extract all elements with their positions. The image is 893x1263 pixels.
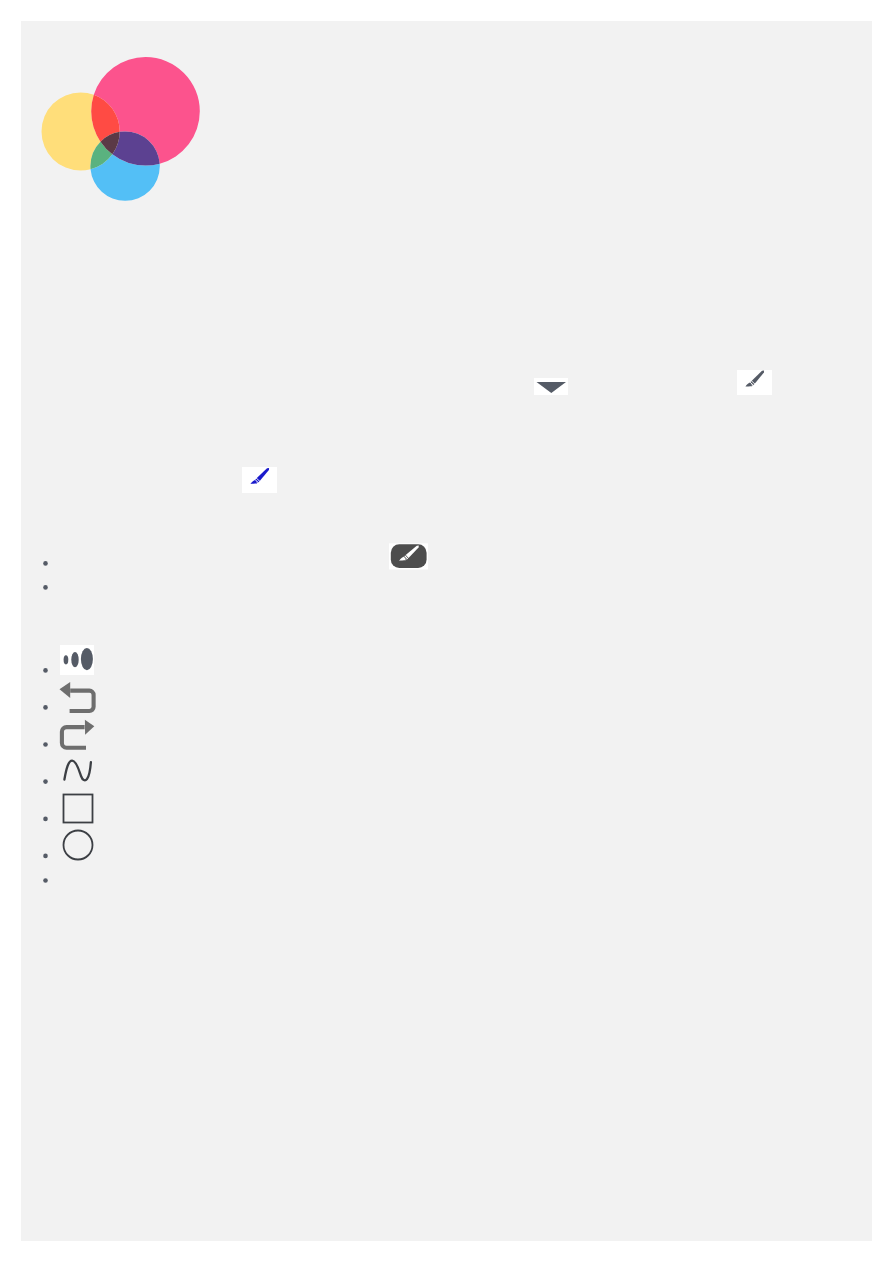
- button[interactable]: Brush colour: [242, 467, 277, 493]
- button[interactable]: Rectangle: [62, 793, 94, 824]
- button[interactable]: Brush tool selected: [390, 544, 427, 569]
- button[interactable]: Redo: [61, 718, 96, 751]
- button[interactable]: Brush size: [60, 645, 94, 675]
- button[interactable]: Brush tool: [737, 370, 772, 395]
- button[interactable]: Undo: [59, 681, 95, 714]
- button[interactable]: Freehand: [62, 757, 94, 784]
- button[interactable]: Ellipse: [62, 829, 94, 861]
- button[interactable]: Show more: [534, 378, 568, 395]
